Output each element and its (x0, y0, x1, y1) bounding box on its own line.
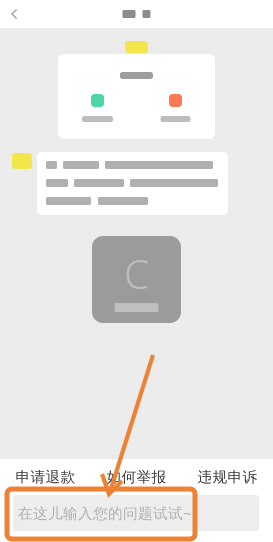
button[interactable] (136, 94, 214, 122)
button[interactable]: Back (0, 0, 44, 28)
button[interactable]: 违规申诉 (182, 459, 273, 495)
staticText: C (124, 247, 149, 300)
button[interactable]: 在这儿输入您的问题试试~ (13, 495, 259, 531)
button[interactable]: Image attachment (92, 236, 181, 323)
staticText: 违规申诉 (197, 468, 257, 486)
button[interactable]: 申请退款 (0, 459, 91, 495)
staticText: 如何举报 (106, 468, 166, 486)
button[interactable]: 如何举报 (91, 459, 182, 495)
staticText: 在这儿输入您的问题试试~ (18, 503, 191, 523)
button[interactable] (58, 94, 136, 122)
staticText: 申请退款 (15, 468, 75, 486)
